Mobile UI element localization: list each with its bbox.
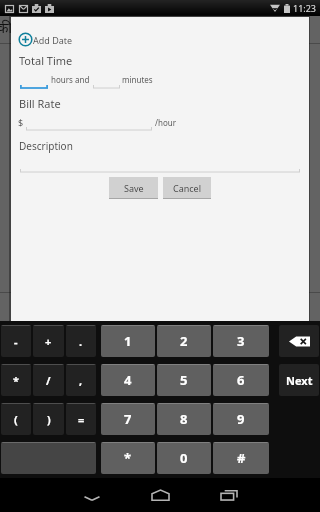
staticText: hours and: [51, 74, 90, 85]
staticText: 0: [180, 449, 188, 467]
button[interactable]: 3: [213, 325, 269, 357]
staticText: Total Time: [19, 53, 73, 68]
button[interactable]: Next: [279, 364, 319, 396]
button[interactable]: /: [33, 364, 64, 396]
staticText: Bill Rate: [19, 96, 61, 111]
button[interactable]: Cancel: [163, 177, 211, 199]
button[interactable]: Recents: [205, 478, 253, 512]
button[interactable]: 5: [157, 364, 211, 396]
staticText: 8: [180, 410, 188, 428]
button[interactable]: *: [101, 442, 155, 474]
staticText: /: [46, 373, 51, 388]
staticText: 3: [237, 332, 245, 350]
staticText: Description: [19, 139, 73, 153]
staticText: #: [237, 449, 246, 467]
staticText: ): [47, 412, 51, 427]
button[interactable]: =: [66, 403, 96, 435]
staticText: 4: [124, 371, 132, 389]
staticText: *: [13, 373, 19, 388]
button[interactable]: Save: [109, 177, 158, 199]
staticText: minutes: [122, 74, 153, 85]
staticText: 2: [180, 332, 188, 350]
staticText: 9: [237, 410, 245, 428]
staticText: /hour: [155, 117, 177, 128]
button[interactable]: ): [33, 403, 64, 435]
staticText: Add Date: [33, 34, 73, 46]
button[interactable]: 9: [213, 403, 269, 435]
button[interactable]: .: [66, 325, 96, 357]
button[interactable]: 7: [101, 403, 155, 435]
button[interactable]: 2: [157, 325, 211, 357]
staticText: (: [14, 412, 18, 427]
staticText: की: [0, 17, 13, 37]
button[interactable]: -: [1, 325, 31, 357]
button[interactable]: 6: [213, 364, 269, 396]
button[interactable]: Add Date: [18, 32, 73, 47]
staticText: $: [18, 116, 24, 128]
staticText: Cancel: [173, 182, 202, 194]
button[interactable]: Space: [1, 442, 96, 474]
button[interactable]: Delete: [279, 325, 319, 357]
staticText: .: [79, 334, 83, 349]
staticText: =: [78, 412, 85, 427]
button[interactable]: 1: [101, 325, 155, 357]
staticText: 5: [180, 371, 188, 389]
staticText: -: [14, 334, 18, 349]
staticText: ,: [79, 373, 83, 388]
button[interactable]: 8: [157, 403, 211, 435]
staticText: 1: [124, 332, 132, 350]
staticText: 11:23: [293, 2, 317, 14]
button[interactable]: 0: [157, 442, 211, 474]
button[interactable]: Home: [136, 478, 184, 512]
staticText: +: [45, 334, 52, 349]
button[interactable]: Hide keyboard: [68, 478, 116, 512]
button[interactable]: *: [1, 364, 31, 396]
button[interactable]: 4: [101, 364, 155, 396]
staticText: 7: [124, 410, 132, 428]
button[interactable]: (: [1, 403, 31, 435]
staticText: 6: [237, 371, 245, 389]
staticText: Next: [286, 373, 313, 388]
button[interactable]: ,: [66, 364, 96, 396]
button[interactable]: +: [33, 325, 64, 357]
staticText: *: [124, 449, 132, 467]
staticText: Save: [124, 182, 144, 194]
button[interactable]: #: [213, 442, 269, 474]
